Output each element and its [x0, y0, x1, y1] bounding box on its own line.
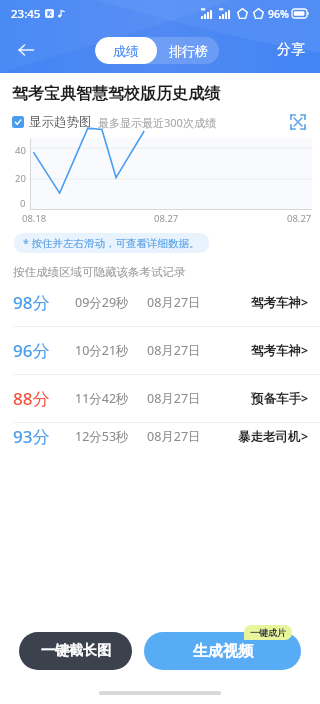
staticText: K: [47, 9, 52, 18]
staticText: >: [301, 390, 309, 407]
button[interactable]: 生成视频: [144, 632, 301, 670]
staticText: 08月27日: [147, 342, 215, 359]
button[interactable]: Back: [0, 27, 52, 73]
staticText: 08月27日: [147, 294, 215, 311]
staticText: 10分21秒: [75, 342, 147, 359]
button[interactable]: 显示趋势图: [12, 114, 92, 130]
staticText: 08.18: [22, 212, 47, 225]
staticText: 20: [15, 172, 26, 185]
button[interactable]: 成绩: [95, 37, 157, 64]
staticText: >: [301, 342, 309, 359]
button[interactable]: Fullscreen: [288, 112, 308, 132]
button[interactable]: 排行榜: [157, 37, 219, 64]
button[interactable]: 分享: [262, 27, 320, 73]
staticText: * 按住并左右滑动，可查看详细数据。: [23, 236, 200, 250]
staticText: 40: [15, 144, 26, 157]
staticText: 预备车手: [251, 391, 301, 407]
button[interactable]: 一键截长图: [19, 632, 132, 670]
button[interactable]: 98分: [0, 279, 320, 326]
staticText: 93分: [13, 425, 75, 448]
staticText: 一键截长图: [41, 642, 111, 660]
staticText: 驾考车神: [251, 343, 301, 359]
staticText: 08月27日: [147, 390, 215, 407]
staticText: 显示趋势图: [29, 114, 92, 130]
staticText: >: [301, 428, 309, 445]
staticText: 按住成绩区域可隐藏该条考试记录: [13, 265, 186, 279]
staticText: 11分42秒: [75, 390, 147, 407]
staticText: 09分29秒: [75, 294, 147, 311]
staticText: 96%: [268, 7, 289, 21]
button[interactable]: 96分: [0, 327, 320, 374]
button[interactable]: 93分: [0, 423, 320, 449]
button[interactable]: 88分: [0, 375, 320, 422]
staticText: 驾考宝典智慧驾校版历史成绩: [12, 84, 220, 104]
staticText: 12分53秒: [75, 428, 147, 445]
staticText: 暴走老司机: [238, 429, 301, 445]
staticText: 驾考车神: [251, 295, 301, 311]
staticText: 0: [20, 197, 26, 210]
staticText: 最多显示最近300次成绩: [98, 115, 216, 130]
staticText: 23:45: [11, 6, 41, 22]
staticText: 08.27: [154, 212, 179, 225]
staticText: 08月27日: [147, 428, 215, 445]
staticText: 96分: [13, 339, 75, 362]
staticText: 88分: [13, 387, 75, 410]
staticText: 98分: [13, 291, 75, 314]
staticText: 成绩: [113, 43, 139, 59]
staticText: >: [301, 294, 309, 311]
staticText: 08.27: [287, 212, 312, 225]
staticText: 分享: [277, 41, 305, 59]
staticText: 生成视频: [193, 642, 253, 661]
staticText: 一键成片: [250, 627, 286, 638]
staticText: 排行榜: [169, 43, 208, 59]
